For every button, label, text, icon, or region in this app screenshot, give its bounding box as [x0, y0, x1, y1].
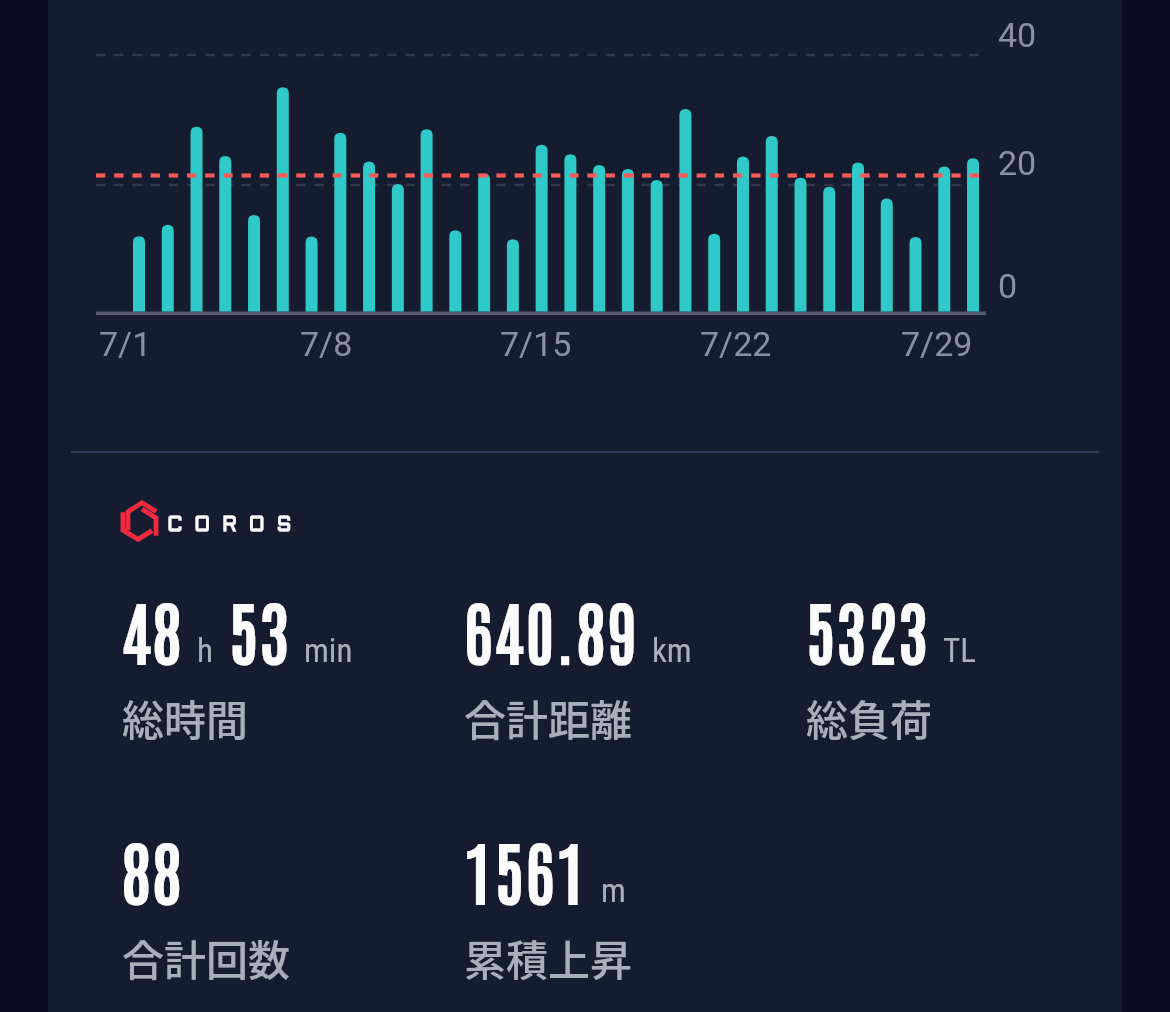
staticText: 5323: [806, 585, 930, 673]
staticText: COROS: [167, 516, 304, 536]
staticText: 640.89: [464, 585, 639, 673]
staticText: TL: [943, 631, 976, 670]
staticText: 20: [998, 143, 1037, 183]
staticText: 88: [122, 825, 184, 913]
staticText: m: [601, 871, 626, 910]
staticText: 合計距離: [464, 687, 633, 748]
button[interactable]: COROS: [119, 497, 304, 545]
staticText: 1561: [464, 825, 588, 913]
staticText: 合計回数: [122, 927, 291, 988]
staticText: 53: [229, 585, 291, 673]
staticText: 48: [122, 585, 184, 673]
button[interactable]: Monthly training load chart: [48, 0, 1122, 380]
staticText: 7/29: [901, 324, 973, 364]
staticText: 7/15: [500, 324, 572, 364]
staticText: 7/22: [700, 324, 772, 364]
staticText: 40: [998, 15, 1037, 55]
button[interactable]: 5323: [806, 585, 1136, 785]
staticText: km: [652, 631, 692, 670]
staticText: h: [197, 631, 213, 670]
staticText: 総負荷: [806, 687, 933, 748]
button[interactable]: 640.89: [464, 585, 794, 785]
staticText: 7/8: [300, 324, 353, 364]
staticText: 累積上昇: [464, 927, 633, 988]
button[interactable]: 48: [122, 585, 452, 785]
staticText: 7/1: [99, 324, 152, 364]
staticText: 0: [998, 266, 1018, 306]
staticText: 総時間: [122, 687, 249, 748]
staticText: min: [304, 631, 353, 670]
button[interactable]: 1561: [464, 825, 794, 1012]
button[interactable]: 88: [122, 825, 452, 1012]
